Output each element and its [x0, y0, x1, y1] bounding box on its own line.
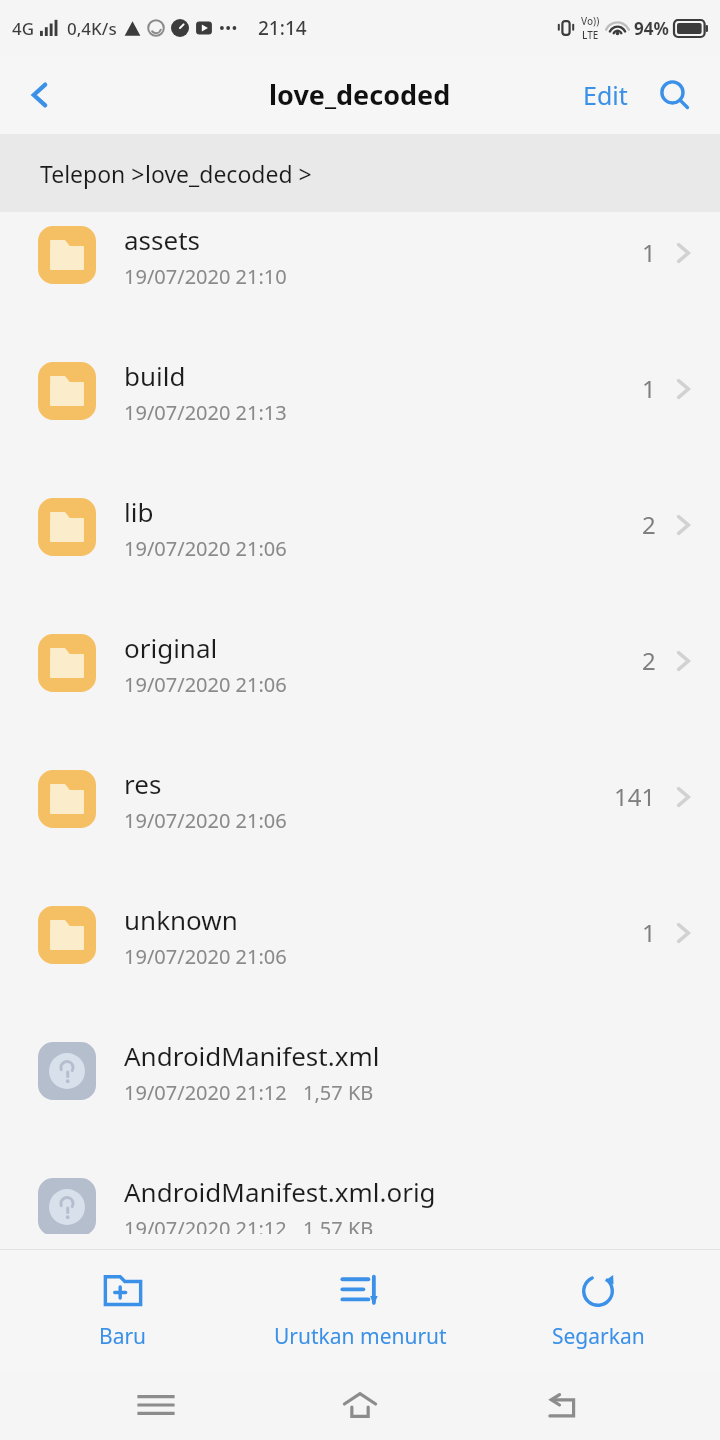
staticText: Vo)) — [581, 14, 600, 28]
staticText: 19/07/2020 21:06 — [124, 535, 287, 562]
button[interactable]: Back — [10, 65, 70, 125]
staticText: 2 — [642, 508, 656, 541]
staticText: 21:14 — [258, 15, 307, 41]
staticText: 19/07/2020 21:06 — [124, 943, 287, 970]
staticText: assets — [124, 222, 200, 257]
button[interactable]: Segarkan — [483, 1264, 713, 1357]
staticText: 4G — [12, 17, 35, 40]
button[interactable]: AndroidManifest.xml.orig — [0, 1164, 720, 1234]
button[interactable]: Edit — [575, 70, 636, 120]
staticText: Telepon > — [40, 158, 145, 189]
button[interactable]: build — [0, 348, 720, 484]
staticText: 1,57 KB — [303, 1079, 374, 1106]
staticText: Urutkan menurut — [274, 1322, 447, 1351]
button[interactable]: Baru — [8, 1264, 238, 1357]
staticText: lib — [124, 494, 154, 529]
staticText: Segarkan — [552, 1322, 645, 1351]
staticText: 19/07/2020 21:12 — [124, 1079, 287, 1106]
staticText: 19/07/2020 21:10 — [124, 263, 287, 290]
button[interactable]: Urutkan menurut — [245, 1264, 475, 1357]
button[interactable]: Recent apps — [108, 1370, 204, 1440]
staticText: unknown — [124, 902, 238, 937]
staticText: 1 — [642, 236, 656, 269]
staticText: original — [124, 630, 218, 665]
staticText: 19/07/2020 21:12 — [124, 1215, 287, 1234]
staticText: AndroidManifest.xml.orig — [124, 1174, 436, 1209]
staticText: 19/07/2020 21:06 — [124, 671, 287, 698]
staticText: love_decoded > — [145, 158, 312, 189]
button[interactable]: Home — [312, 1370, 408, 1440]
button[interactable]: original — [0, 620, 720, 756]
staticText: 141 — [614, 780, 656, 813]
staticText: 1 — [642, 916, 656, 949]
staticText: 1 — [642, 372, 656, 405]
staticText: 1,57 KB — [303, 1215, 374, 1234]
staticText: 0,4K/s — [67, 17, 117, 40]
staticText: res — [124, 766, 162, 801]
button[interactable]: unknown — [0, 892, 720, 1028]
button[interactable]: Search — [652, 72, 698, 118]
button[interactable]: assets — [0, 212, 720, 348]
staticText: 19/07/2020 21:13 — [124, 399, 287, 426]
staticText: Baru — [99, 1322, 147, 1351]
button[interactable]: res — [0, 756, 720, 892]
button[interactable]: Back — [516, 1370, 612, 1440]
staticText: LTE — [582, 28, 599, 42]
staticText: AndroidManifest.xml — [124, 1038, 380, 1073]
button[interactable]: AndroidManifest.xml — [0, 1028, 720, 1164]
staticText: Edit — [583, 78, 628, 112]
staticText: 2 — [642, 644, 656, 677]
staticText: 94% — [634, 17, 669, 40]
staticText: build — [124, 358, 186, 393]
staticText: 19/07/2020 21:06 — [124, 807, 287, 834]
button[interactable]: Telepon > — [0, 134, 720, 212]
staticText: love_decoded — [269, 76, 451, 113]
button[interactable]: lib — [0, 484, 720, 620]
